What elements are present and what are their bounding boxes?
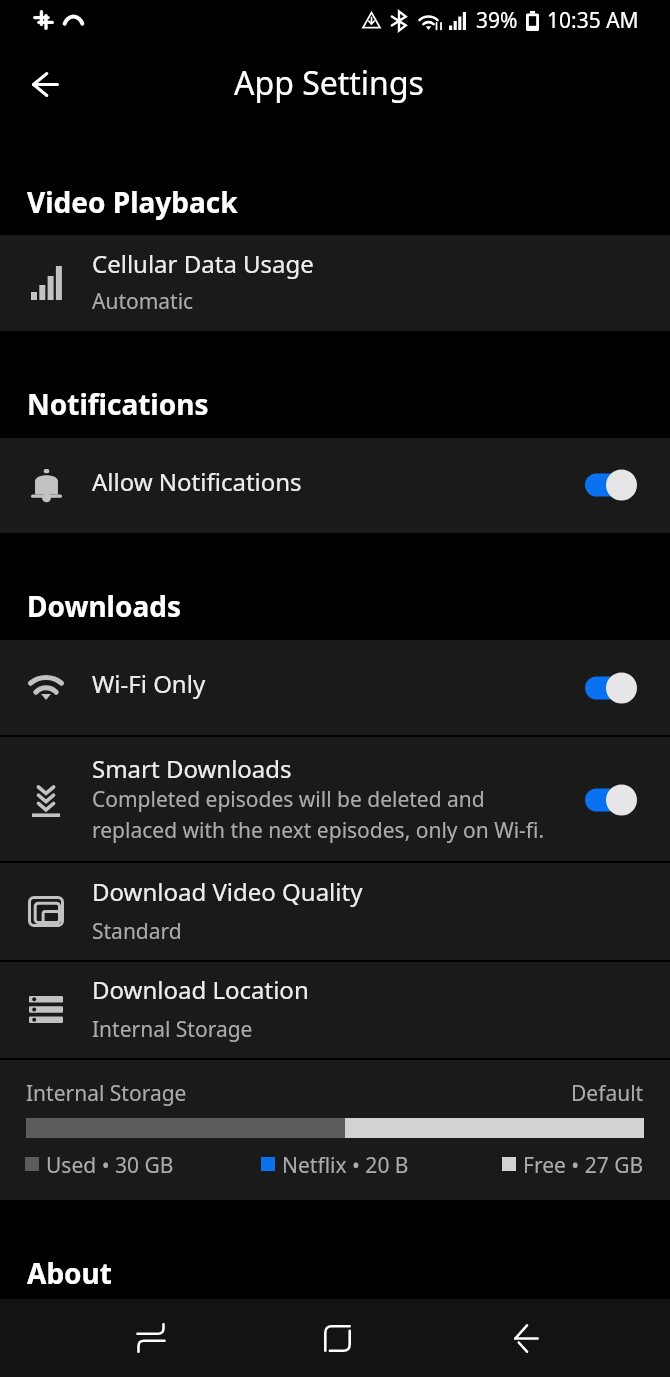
button[interactable]: Download Video Quality [0, 863, 670, 960]
staticText: Default [571, 1079, 644, 1108]
button[interactable]: Download Location [0, 962, 670, 1058]
button[interactable]: Back [16, 55, 74, 113]
staticText: 10:35 AM [547, 6, 639, 35]
staticText: About [27, 1254, 112, 1292]
button[interactable]: Home [244, 1299, 431, 1377]
staticText: Automatic [92, 287, 194, 316]
staticText: 39% [476, 6, 518, 35]
button[interactable]: Allow Notifications [0, 438, 670, 533]
staticText: Standard [92, 917, 182, 946]
staticText: Completed episodes will be deleted and r… [92, 785, 545, 844]
button[interactable]: Cellular Data Usage [0, 235, 670, 331]
staticText: Notifications [27, 385, 209, 423]
button[interactable]: Smart Downloads [0, 737, 670, 861]
staticText: Internal Storage [26, 1079, 187, 1108]
button[interactable]: Back [431, 1299, 621, 1377]
button[interactable]: Toggle [585, 467, 637, 503]
button[interactable]: Wi-Fi Only [0, 640, 670, 735]
staticText: Internal Storage [92, 1015, 253, 1044]
staticText: Download Video Quality [92, 875, 363, 908]
staticText: Wi-Fi Only [92, 667, 206, 700]
button[interactable]: Recents [57, 1299, 244, 1377]
button[interactable]: Toggle [585, 782, 637, 818]
staticText: App Settings [234, 61, 424, 105]
staticText: Cellular Data Usage [92, 247, 314, 280]
staticText: Netflix • 20 B [282, 1151, 409, 1177]
staticText: Video Playback [27, 183, 238, 221]
staticText: Smart Downloads [92, 752, 292, 785]
staticText: Downloads [27, 587, 181, 625]
staticText: Used • 30 GB [46, 1151, 174, 1177]
staticText: Free • 27 GB [523, 1151, 644, 1177]
button[interactable]: Toggle [585, 670, 637, 706]
staticText: Allow Notifications [92, 465, 302, 498]
staticText: Download Location [92, 973, 309, 1006]
